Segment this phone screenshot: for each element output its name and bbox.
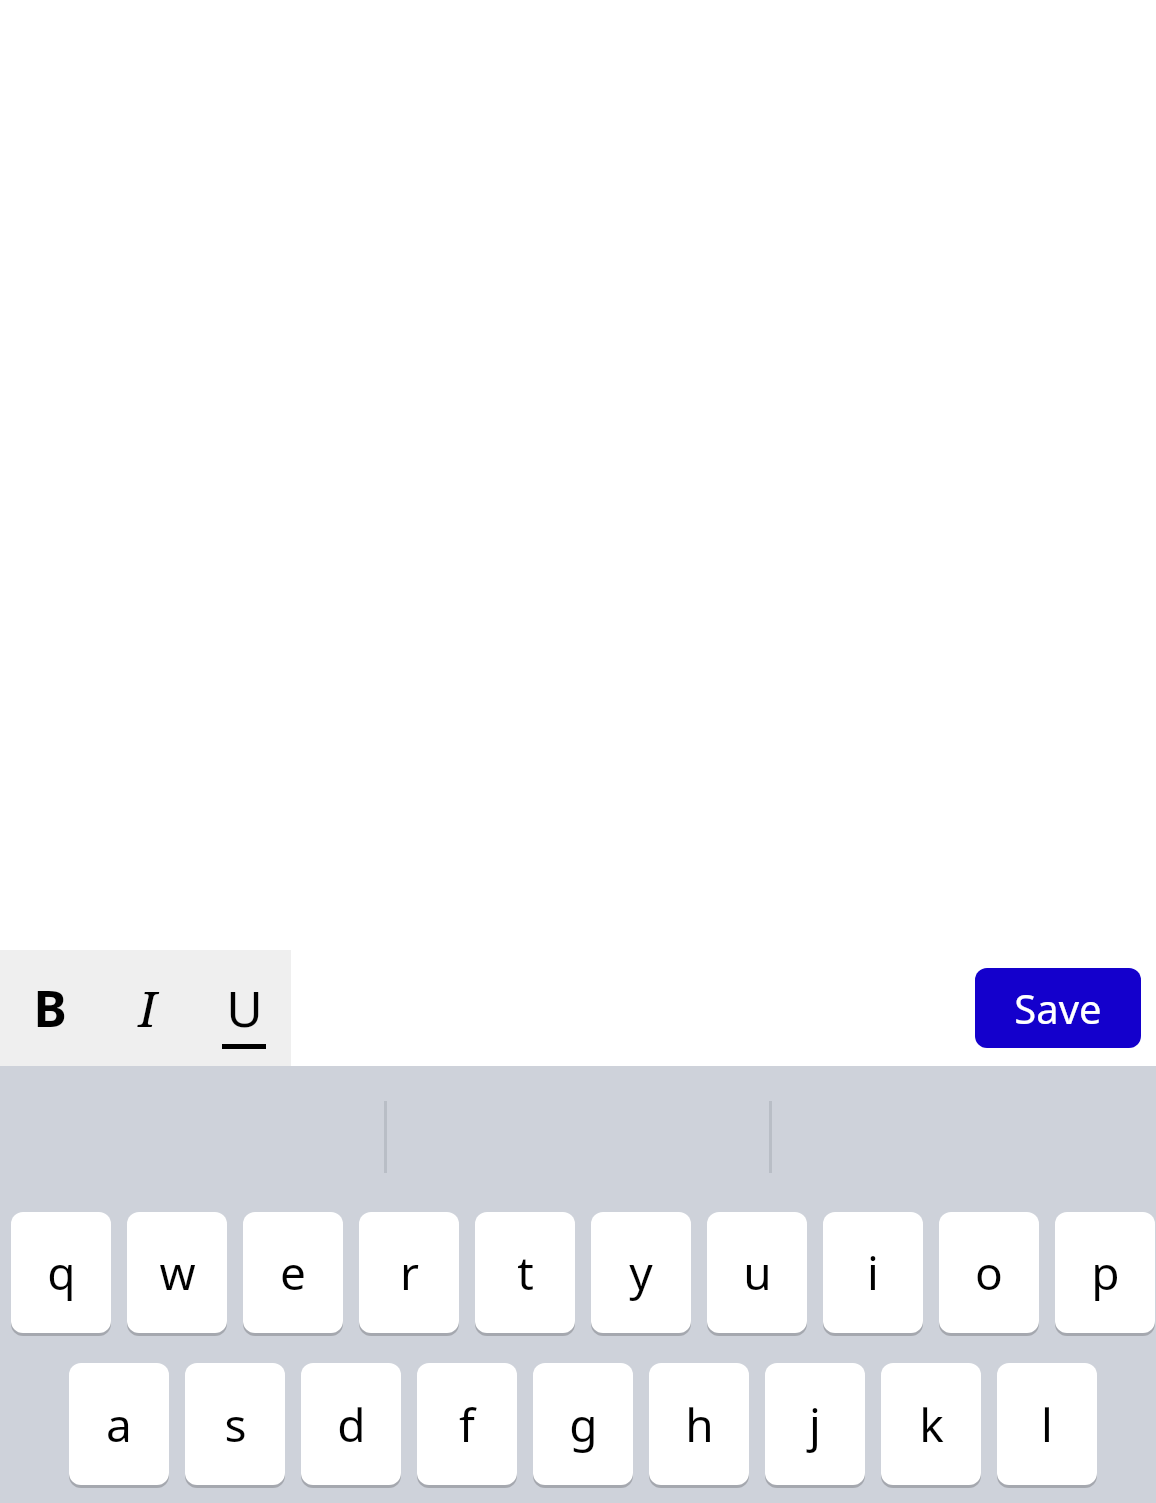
staticText: o: [975, 1241, 1003, 1304]
button[interactable]: i: [823, 1212, 923, 1333]
staticText: t: [517, 1241, 534, 1304]
button[interactable]: Italic: [103, 950, 191, 1066]
button[interactable]: p: [1055, 1212, 1155, 1333]
staticText: I: [138, 974, 157, 1042]
button[interactable]: d: [301, 1363, 401, 1485]
button[interactable]: y: [591, 1212, 691, 1333]
staticText: k: [919, 1393, 944, 1456]
button[interactable]: k: [881, 1363, 981, 1485]
staticText: u: [743, 1241, 772, 1304]
button[interactable]: w: [127, 1212, 227, 1333]
button[interactable]: l: [997, 1363, 1097, 1485]
staticText: w: [159, 1241, 196, 1304]
button[interactable]: g: [533, 1363, 633, 1485]
button[interactable]: e: [243, 1212, 343, 1333]
staticText: h: [685, 1393, 714, 1456]
button[interactable]: o: [939, 1212, 1039, 1333]
button[interactable]: Underline: [200, 950, 288, 1066]
staticText: a: [106, 1393, 132, 1456]
staticText: r: [400, 1241, 419, 1304]
button[interactable]: Save: [975, 968, 1141, 1048]
staticText: p: [1091, 1241, 1120, 1304]
staticText: s: [224, 1393, 247, 1456]
button[interactable]: a: [69, 1363, 169, 1485]
staticText: U: [226, 974, 263, 1042]
button[interactable]: Bold: [6, 950, 94, 1066]
staticText: j: [809, 1393, 821, 1456]
button[interactable]: t: [475, 1212, 575, 1333]
button[interactable]: f: [417, 1363, 517, 1485]
button[interactable]: r: [359, 1212, 459, 1333]
staticText: f: [459, 1393, 475, 1456]
staticText: g: [569, 1393, 598, 1456]
button[interactable]: j: [765, 1363, 865, 1485]
staticText: i: [867, 1241, 879, 1304]
staticText: d: [337, 1393, 366, 1456]
button[interactable]: s: [185, 1363, 285, 1485]
button[interactable]: u: [707, 1212, 807, 1333]
staticText: B: [33, 974, 67, 1042]
staticText: Save: [1014, 981, 1102, 1035]
staticText: y: [629, 1241, 653, 1304]
staticText: l: [1041, 1393, 1053, 1456]
staticText: q: [47, 1241, 76, 1304]
staticText: e: [280, 1241, 306, 1304]
button[interactable]: h: [649, 1363, 749, 1485]
button[interactable]: q: [11, 1212, 111, 1333]
